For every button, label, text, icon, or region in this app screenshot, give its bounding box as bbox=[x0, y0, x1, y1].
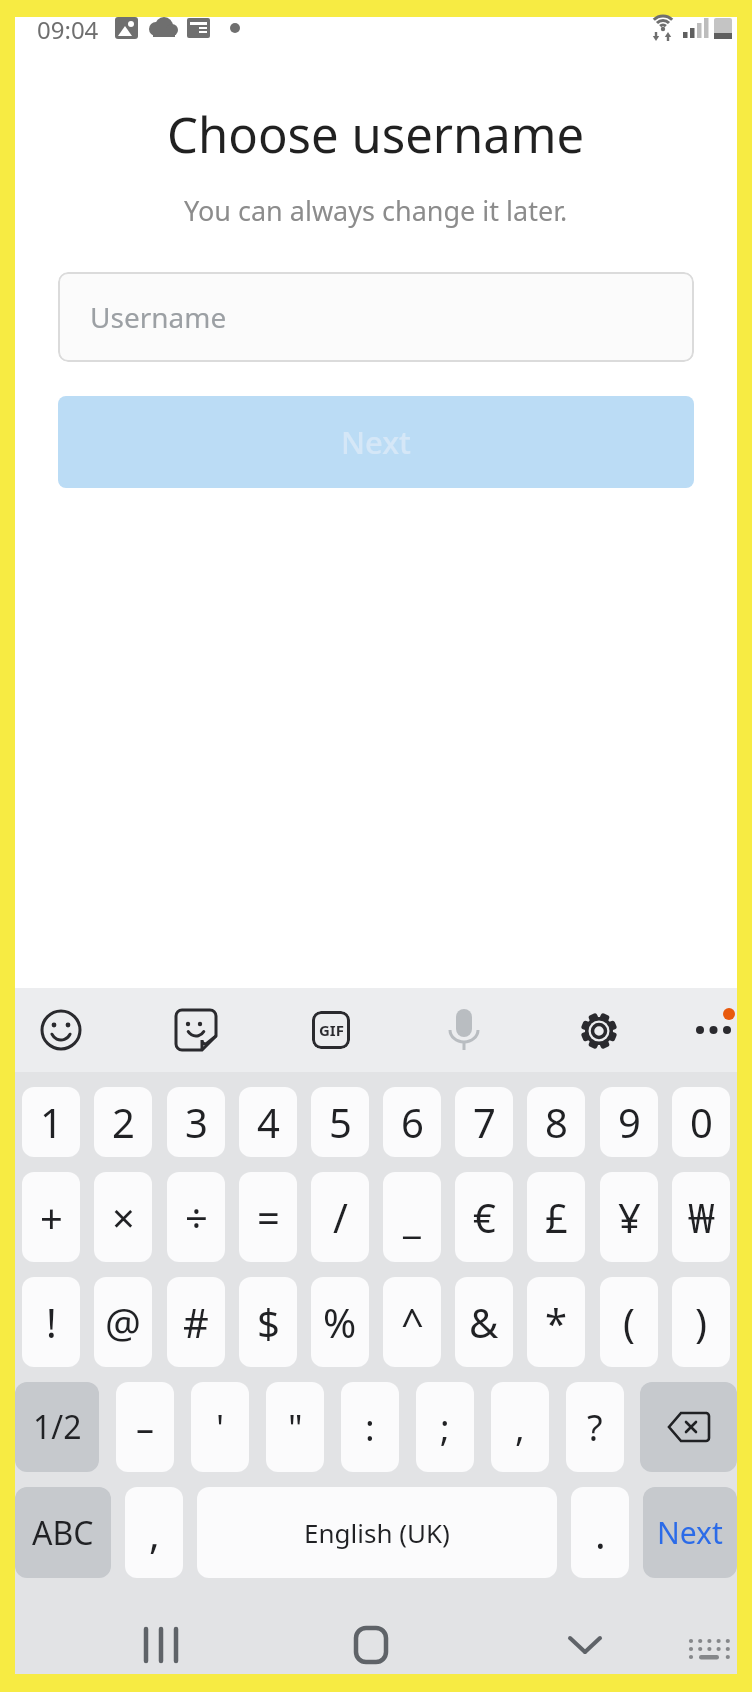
staticText: 09:04 bbox=[37, 13, 99, 46]
button[interactable] bbox=[126, 1612, 196, 1678]
button[interactable]: ) bbox=[672, 1277, 730, 1367]
staticText: 4 bbox=[257, 1095, 280, 1149]
button[interactable] bbox=[166, 1000, 226, 1060]
button[interactable]: 4 bbox=[239, 1087, 297, 1157]
button[interactable]: € bbox=[455, 1172, 513, 1262]
staticText: , bbox=[515, 1403, 525, 1452]
button[interactable] bbox=[31, 1000, 91, 1060]
staticText: ₩ bbox=[688, 1190, 715, 1244]
button[interactable] bbox=[336, 1612, 406, 1678]
staticText: 5 bbox=[329, 1095, 352, 1149]
staticText: _ bbox=[403, 1190, 421, 1244]
button[interactable]: & bbox=[455, 1277, 513, 1367]
button[interactable]: ! bbox=[22, 1277, 80, 1367]
staticText: € bbox=[473, 1190, 496, 1244]
button[interactable]: , bbox=[125, 1487, 183, 1578]
button[interactable]: ' bbox=[191, 1382, 249, 1472]
button[interactable]: 0 bbox=[672, 1087, 730, 1157]
staticText: ; bbox=[440, 1403, 450, 1452]
staticText: , bbox=[149, 1506, 160, 1560]
button[interactable]: = bbox=[239, 1172, 297, 1262]
staticText: You can always change it later. bbox=[184, 192, 568, 229]
staticText: 3 bbox=[185, 1095, 208, 1149]
button[interactable]: : bbox=[341, 1382, 399, 1472]
staticText: ! bbox=[46, 1295, 57, 1349]
button[interactable]: Username bbox=[58, 272, 694, 362]
staticText: – bbox=[136, 1403, 154, 1452]
staticText: ÷ bbox=[185, 1190, 208, 1244]
staticText: 2 bbox=[112, 1095, 135, 1149]
staticText: × bbox=[112, 1190, 135, 1244]
button[interactable]: 6 bbox=[383, 1087, 441, 1157]
button[interactable]: _ bbox=[383, 1172, 441, 1262]
button[interactable]: 9 bbox=[600, 1087, 658, 1157]
button[interactable]: ^ bbox=[383, 1277, 441, 1367]
button[interactable]: ¥ bbox=[600, 1172, 658, 1262]
staticText: . bbox=[595, 1506, 606, 1560]
button[interactable] bbox=[434, 1000, 494, 1060]
button[interactable]: 1 bbox=[22, 1087, 80, 1157]
button[interactable]: 2 bbox=[94, 1087, 152, 1157]
button[interactable]: 5 bbox=[311, 1087, 369, 1157]
button[interactable] bbox=[640, 1382, 737, 1472]
staticText: ' bbox=[216, 1403, 225, 1452]
button[interactable] bbox=[569, 1000, 629, 1060]
staticText: 8 bbox=[545, 1095, 568, 1149]
button[interactable]: 8 bbox=[527, 1087, 585, 1157]
button[interactable]: / bbox=[311, 1172, 369, 1262]
button[interactable]: $ bbox=[239, 1277, 297, 1367]
button[interactable]: , bbox=[491, 1382, 549, 1472]
staticText: GIF bbox=[319, 1020, 344, 1040]
button[interactable]: 7 bbox=[455, 1087, 513, 1157]
staticText: Choose username bbox=[167, 101, 585, 168]
button[interactable]: ; bbox=[416, 1382, 474, 1472]
button[interactable]: × bbox=[94, 1172, 152, 1262]
button[interactable]: £ bbox=[527, 1172, 585, 1262]
staticText: 0 bbox=[690, 1095, 713, 1149]
staticText: ? bbox=[587, 1403, 603, 1452]
staticText: & bbox=[469, 1295, 499, 1349]
staticText: 7 bbox=[473, 1095, 496, 1149]
button[interactable]: ÷ bbox=[167, 1172, 225, 1262]
staticText: + bbox=[40, 1190, 63, 1244]
button[interactable] bbox=[550, 1612, 620, 1678]
staticText: / bbox=[333, 1190, 348, 1244]
staticText: Next bbox=[341, 421, 411, 463]
staticText: @ bbox=[105, 1295, 141, 1349]
button[interactable]: 3 bbox=[167, 1087, 225, 1157]
button[interactable]: " bbox=[266, 1382, 324, 1472]
staticText: ( bbox=[623, 1295, 635, 1349]
button[interactable]: . bbox=[571, 1487, 629, 1578]
button[interactable] bbox=[670, 1612, 740, 1678]
button[interactable]: ABC bbox=[15, 1487, 111, 1578]
button[interactable]: ₩ bbox=[672, 1172, 730, 1262]
button[interactable] bbox=[684, 1000, 744, 1060]
staticText: 1 bbox=[40, 1095, 63, 1149]
button[interactable]: # bbox=[167, 1277, 225, 1367]
button[interactable]: ( bbox=[600, 1277, 658, 1367]
staticText: # bbox=[183, 1295, 209, 1349]
staticText: Next bbox=[657, 1512, 723, 1553]
staticText: " bbox=[288, 1403, 303, 1452]
staticText: 6 bbox=[401, 1095, 424, 1149]
staticText: Username bbox=[90, 298, 227, 336]
staticText: ) bbox=[695, 1295, 707, 1349]
button[interactable]: English (UK) bbox=[197, 1487, 557, 1578]
button[interactable]: 1/2 bbox=[15, 1382, 99, 1472]
button[interactable]: ? bbox=[566, 1382, 624, 1472]
staticText: % bbox=[323, 1295, 357, 1349]
button[interactable]: @ bbox=[94, 1277, 152, 1367]
staticText: * bbox=[545, 1295, 568, 1349]
button[interactable]: Next bbox=[643, 1487, 737, 1578]
staticText: £ bbox=[545, 1190, 568, 1244]
button[interactable]: Next bbox=[58, 396, 694, 488]
button[interactable]: – bbox=[116, 1382, 174, 1472]
staticText: ^ bbox=[401, 1295, 424, 1349]
staticText: $ bbox=[257, 1295, 280, 1349]
staticText: 1/2 bbox=[33, 1405, 82, 1449]
staticText: ¥ bbox=[618, 1190, 641, 1244]
button[interactable]: GIF bbox=[312, 1011, 350, 1049]
button[interactable]: + bbox=[22, 1172, 80, 1262]
button[interactable]: % bbox=[311, 1277, 369, 1367]
button[interactable]: * bbox=[527, 1277, 585, 1367]
